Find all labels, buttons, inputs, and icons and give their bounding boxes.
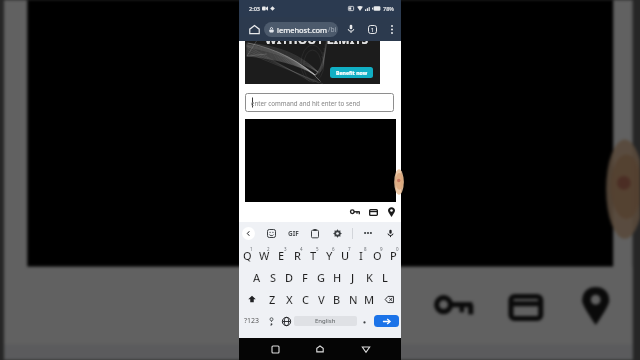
button[interactable]: Backspace (377, 288, 401, 310)
button[interactable]: Stickers (264, 226, 278, 240)
button[interactable]: G (313, 266, 329, 288)
staticText: E (278, 248, 285, 263)
button[interactable]: B (329, 288, 345, 310)
button[interactable]: I (353, 244, 369, 266)
staticText: Q (243, 248, 252, 263)
staticText: R (294, 248, 301, 263)
staticText: GIF (288, 229, 299, 238)
button[interactable]: E (273, 244, 289, 266)
button[interactable]: Back (242, 227, 255, 240)
button[interactable]: N (345, 288, 361, 310)
button[interactable]: Passwords (346, 203, 364, 221)
staticText: 2:03 (249, 5, 260, 12)
staticText: Benefit now (336, 69, 368, 76)
button[interactable]: P (385, 244, 401, 266)
button[interactable]: X (281, 288, 297, 310)
button[interactable]: Benefit now (330, 67, 373, 78)
staticText: O (373, 248, 382, 263)
button[interactable]: U (337, 244, 353, 266)
button[interactable]: English (294, 316, 357, 326)
button[interactable]: C (297, 288, 313, 310)
staticText: 7 (348, 246, 351, 252)
staticText: X (286, 292, 293, 307)
staticText: ?123 (244, 316, 260, 326)
button[interactable]: GIF (286, 226, 300, 240)
button[interactable]: J (345, 266, 361, 288)
button[interactable]: enter command and hit enter to send (245, 93, 394, 112)
button[interactable]: V (313, 288, 329, 310)
button[interactable]: M (361, 288, 377, 310)
button[interactable]: Settings (330, 226, 344, 240)
button[interactable]: Home (245, 20, 263, 38)
staticText: M (364, 292, 375, 307)
staticText: enter command and hit enter to send (251, 99, 361, 107)
button[interactable]: S (265, 266, 281, 288)
button[interactable]: Z (264, 288, 281, 310)
staticText: WITHOUT LIMITS (265, 31, 369, 47)
button[interactable]: W (256, 244, 273, 266)
staticText: 2 (267, 246, 270, 252)
staticText: L (382, 270, 388, 285)
button[interactable]: T (305, 244, 321, 266)
staticText: C (302, 292, 309, 307)
button[interactable]: Payment methods (489, 271, 559, 340)
button[interactable]: O (369, 244, 385, 266)
button[interactable] (245, 119, 396, 202)
staticText: 1 (250, 246, 253, 252)
button[interactable]: R (289, 244, 305, 266)
staticText: U (341, 248, 350, 263)
staticText: T (310, 248, 317, 263)
button[interactable]: More options (385, 23, 398, 36)
button[interactable]: Voice input (383, 226, 397, 240)
staticText: 8 (364, 246, 367, 252)
button[interactable]: L (377, 266, 393, 288)
button[interactable]: Shift (239, 288, 264, 310)
staticText: 1 (371, 26, 375, 33)
button[interactable]: Switch tabs (364, 21, 380, 37)
staticText: S (270, 270, 277, 285)
button[interactable]: H (329, 266, 345, 288)
button[interactable] (357, 310, 372, 332)
button[interactable]: F (297, 266, 313, 288)
staticText: V (318, 292, 325, 307)
button[interactable]: Recent apps (265, 339, 285, 359)
staticText: 5 (316, 246, 319, 252)
staticText: D (285, 270, 294, 285)
button[interactable]: ?123 (239, 310, 264, 332)
staticText: B (333, 292, 341, 307)
button[interactable]: More options (361, 226, 375, 240)
button[interactable]: Home (310, 339, 330, 359)
staticText: I (359, 248, 363, 263)
button[interactable]: Comma (264, 310, 279, 332)
staticText: A (253, 270, 261, 285)
staticText: 4 (300, 246, 303, 252)
staticText: P (390, 248, 397, 263)
staticText: Y (326, 248, 333, 263)
button[interactable]: A (248, 266, 265, 288)
staticText: 78% (383, 5, 394, 12)
staticText: 0 (396, 246, 399, 252)
button[interactable]: Addresses (559, 271, 629, 340)
button[interactable]: Payment methods (364, 203, 382, 221)
staticText: English (315, 317, 336, 325)
button[interactable]: Addresses (382, 203, 400, 221)
button[interactable]: lemehost.com (264, 22, 338, 37)
button[interactable] (27, 0, 613, 267)
staticText: F (302, 270, 308, 285)
button[interactable]: Enter (374, 315, 399, 327)
staticText: /bi (328, 25, 336, 34)
button[interactable]: D (281, 266, 297, 288)
button[interactable]: Clipboard (308, 226, 322, 240)
button[interactable]: Passwords (419, 271, 489, 340)
button[interactable]: Q (239, 244, 256, 266)
button[interactable]: Change language (279, 310, 294, 332)
button[interactable]: Back (356, 339, 376, 359)
button[interactable]: WITHOUT LIMITS (245, 34, 380, 84)
staticText: H (333, 270, 342, 285)
button[interactable]: K (361, 266, 377, 288)
button[interactable]: Y (321, 244, 337, 266)
staticText: 9 (380, 246, 383, 252)
button[interactable]: Voice search (343, 21, 359, 37)
staticText: G (317, 270, 325, 285)
staticText: Z (269, 292, 276, 307)
